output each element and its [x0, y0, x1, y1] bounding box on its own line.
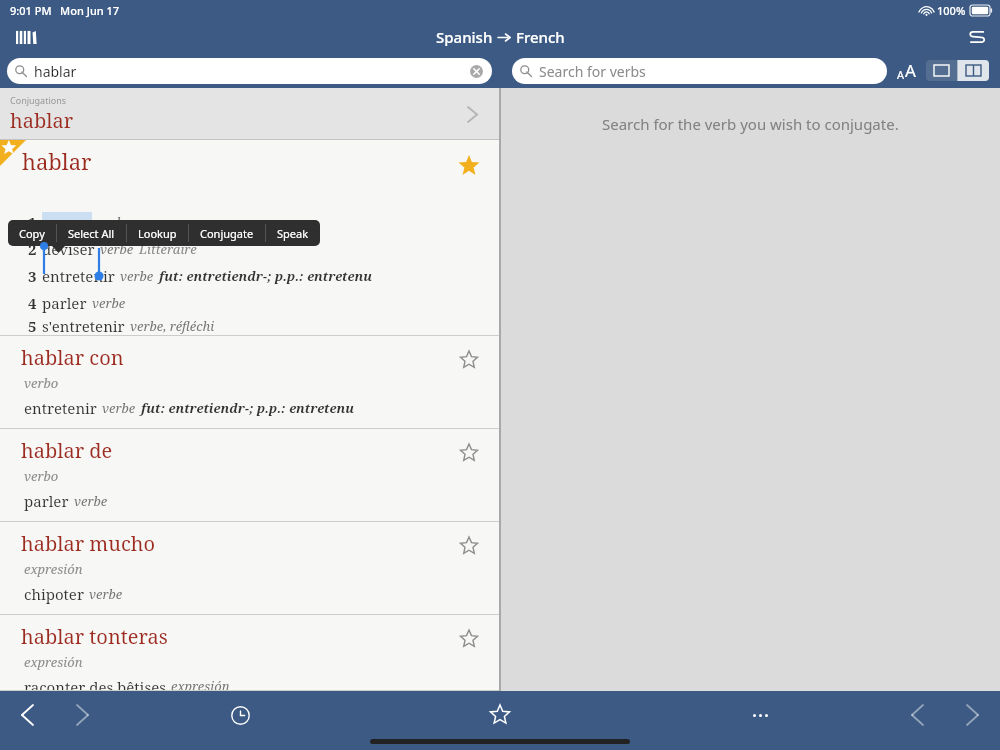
button[interactable]: Lookup: [127, 220, 188, 246]
staticText: hablar de: [21, 437, 113, 464]
staticText: verbe: [74, 492, 108, 510]
button[interactable]: Back: [0, 691, 55, 739]
staticText: 1: [28, 212, 37, 232]
staticText: 2: [28, 239, 37, 259]
button[interactable]: Speak: [266, 220, 320, 246]
staticText: Littéraire: [139, 240, 197, 258]
button[interactable]: Add to favorites: [455, 346, 483, 374]
staticText: verbe: [92, 294, 126, 312]
button[interactable]: Next entry: [945, 691, 1000, 739]
staticText: deviser: [42, 239, 95, 259]
staticText: 9:01 PM Mon Jun 17: [10, 3, 120, 18]
staticText: parler: [24, 491, 69, 511]
button[interactable]: Add to favorites: [455, 625, 483, 653]
staticText: verbe: [102, 399, 136, 417]
staticText: causer: [43, 212, 91, 232]
staticText: raconter des bêtises: [24, 677, 166, 691]
staticText: fut: entretiendr-; p.p.: entretenu: [159, 267, 372, 285]
staticText: Conjugations: [10, 94, 67, 106]
button[interactable]: Previous entry: [890, 691, 945, 739]
button[interactable]: hablar con: [0, 336, 499, 429]
staticText: 4: [28, 293, 37, 313]
button[interactable]: Single pane: [926, 60, 957, 81]
staticText: French: [516, 27, 565, 47]
button[interactable]: Split pane: [958, 60, 989, 81]
staticText: hablar mucho: [21, 530, 155, 557]
button[interactable]: Add to favorites: [455, 439, 483, 467]
staticText: verbo: [24, 467, 59, 485]
staticText: entretenir: [24, 398, 97, 418]
staticText: hablar: [34, 62, 77, 81]
button[interactable]: History: [110, 691, 370, 739]
staticText: A: [897, 67, 905, 82]
staticText: verbe: [97, 213, 131, 231]
staticText: hablar: [22, 146, 92, 176]
staticText: expresión: [171, 677, 230, 691]
button[interactable]: Search for verbs: [512, 58, 887, 84]
staticText: fut: entretiendr-; p.p.: entretenu: [141, 399, 354, 417]
staticText: 3: [28, 266, 37, 286]
button[interactable]: Conjugate: [189, 220, 265, 246]
staticText: A: [905, 59, 916, 82]
button[interactable]: Select All: [57, 220, 126, 246]
staticText: Conjugate: [200, 226, 254, 241]
staticText: 5: [28, 316, 37, 336]
button[interactable]: Swap languages: [962, 22, 992, 52]
staticText: hablar: [10, 107, 74, 134]
button[interactable]: hablar: [7, 58, 492, 84]
staticText: verbe, réfléchi: [130, 317, 215, 335]
staticText: Search for verbs: [539, 62, 646, 81]
staticText: s'entretenir: [42, 316, 125, 336]
staticText: hablar con: [21, 344, 124, 371]
button[interactable]: Forward: [55, 691, 110, 739]
staticText: entretenir: [42, 266, 115, 286]
button[interactable]: Favorite: [455, 152, 483, 180]
button[interactable]: Library: [8, 21, 40, 53]
staticText: 100%: [937, 3, 966, 18]
staticText: hablar tonteras: [21, 623, 168, 650]
button[interactable]: hablar de: [0, 429, 499, 522]
staticText: Select All: [68, 226, 115, 241]
staticText: verbe: [89, 585, 123, 603]
staticText: Lookup: [138, 226, 177, 241]
staticText: verbo: [24, 374, 59, 392]
button[interactable]: Favorites: [370, 691, 630, 739]
button[interactable]: Text size: [895, 59, 918, 82]
button[interactable]: hablar tonteras: [0, 615, 499, 691]
button[interactable]: hablar mucho: [0, 522, 499, 615]
button[interactable]: Copy: [8, 220, 56, 246]
staticText: Search for the verb you wish to conjugat…: [602, 114, 899, 134]
staticText: verbe: [120, 267, 154, 285]
button[interactable]: Clear search: [468, 63, 484, 79]
staticText: Speak: [277, 226, 309, 241]
button[interactable]: More options: [630, 691, 890, 739]
staticText: Spanish: [436, 27, 493, 47]
button[interactable]: Conjugations: [0, 88, 499, 140]
staticText: expresión: [24, 653, 83, 671]
staticText: chipoter: [24, 584, 84, 604]
button[interactable]: Add to favorites: [455, 532, 483, 560]
staticText: verbe: [100, 240, 134, 258]
staticText: Copy: [19, 226, 45, 241]
staticText: parler: [42, 293, 87, 313]
staticText: expresión: [24, 560, 83, 578]
